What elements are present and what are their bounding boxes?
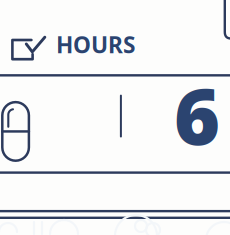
button[interactable]: HOURS [0, 0, 215, 74]
button[interactable]: 6 [0, 0, 230, 96]
staticText: HOURS [56, 29, 135, 59]
staticText: 6 [174, 62, 220, 166]
